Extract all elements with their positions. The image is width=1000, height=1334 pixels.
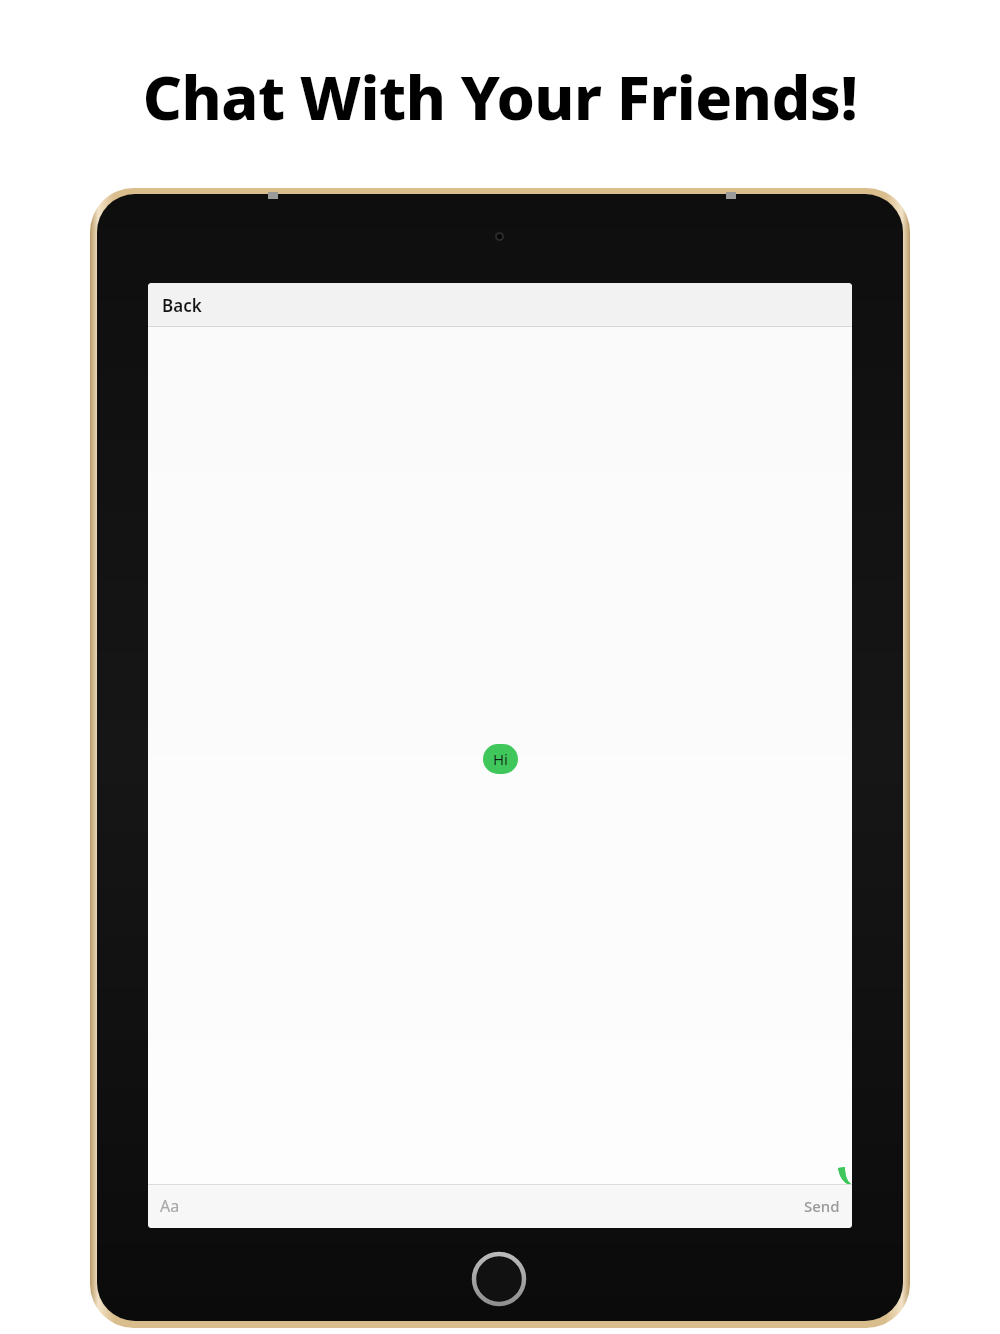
staticText: Chat With Your Friends! bbox=[0, 55, 1000, 138]
staticText: Back bbox=[162, 294, 202, 317]
button[interactable]: Home bbox=[470, 1250, 528, 1308]
staticText: Hi bbox=[493, 749, 508, 769]
button[interactable]: Back bbox=[156, 288, 208, 323]
button[interactable]: Send bbox=[798, 1188, 846, 1224]
button[interactable]: Hi bbox=[148, 333, 852, 1184]
button[interactable]: Hi bbox=[148, 333, 852, 1184]
button[interactable]: Aa bbox=[154, 1187, 186, 1225]
staticText: Aa bbox=[160, 1195, 180, 1217]
staticText: Send bbox=[804, 1196, 840, 1216]
